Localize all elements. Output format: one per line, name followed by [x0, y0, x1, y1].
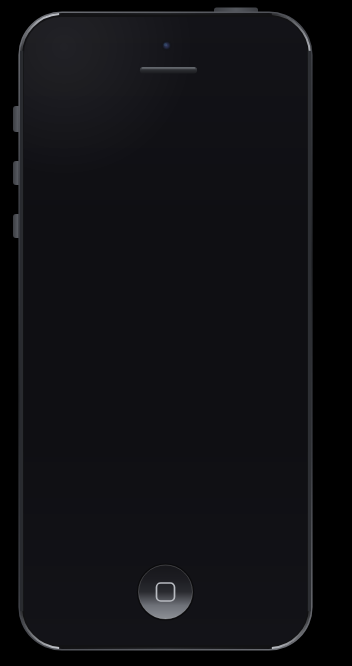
button[interactable]: iPhone device preview	[0, 0, 352, 666]
